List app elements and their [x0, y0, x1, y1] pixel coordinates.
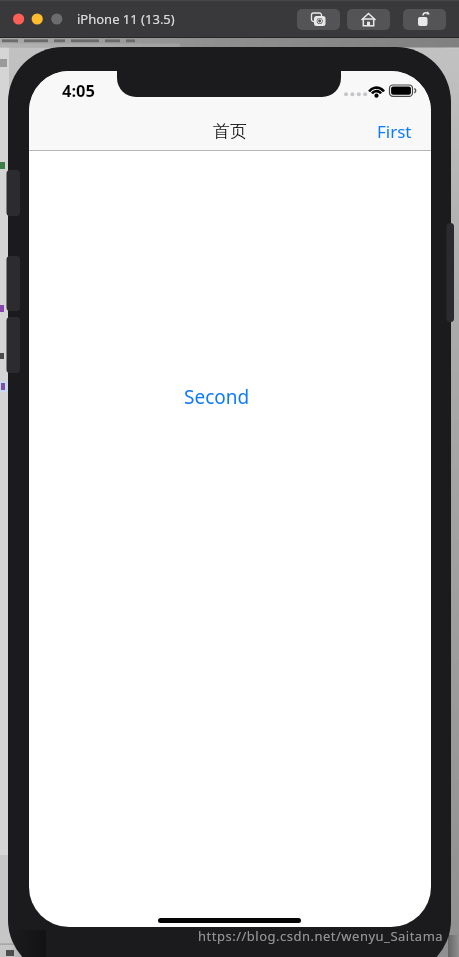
- button[interactable]: [297, 9, 340, 30]
- staticText: https://blog.csdn.net/wenyu_Saitama: [198, 927, 444, 945]
- button[interactable]: [403, 9, 446, 30]
- staticText: 首页: [213, 121, 247, 142]
- button[interactable]: [347, 9, 390, 30]
- staticText: iPhone 11 (13.5): [77, 10, 175, 28]
- staticText: 4:05: [62, 79, 95, 101]
- button[interactable]: Second: [177, 377, 257, 417]
- staticText: First: [377, 120, 412, 143]
- button[interactable]: First: [367, 117, 422, 145]
- staticText: Second: [184, 384, 250, 410]
